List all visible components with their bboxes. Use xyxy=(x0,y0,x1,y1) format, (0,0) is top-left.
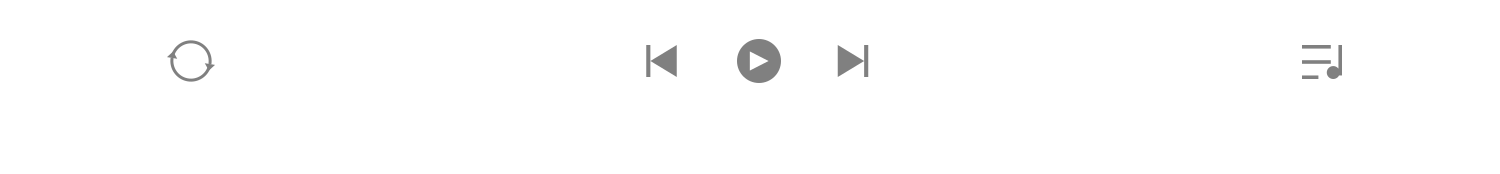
button[interactable]: Play xyxy=(729,31,789,91)
button[interactable]: Repeat xyxy=(161,31,221,91)
button[interactable]: Up Next xyxy=(1292,32,1352,92)
button[interactable]: Previous Track xyxy=(631,31,691,91)
button[interactable]: Next Track xyxy=(823,31,883,91)
